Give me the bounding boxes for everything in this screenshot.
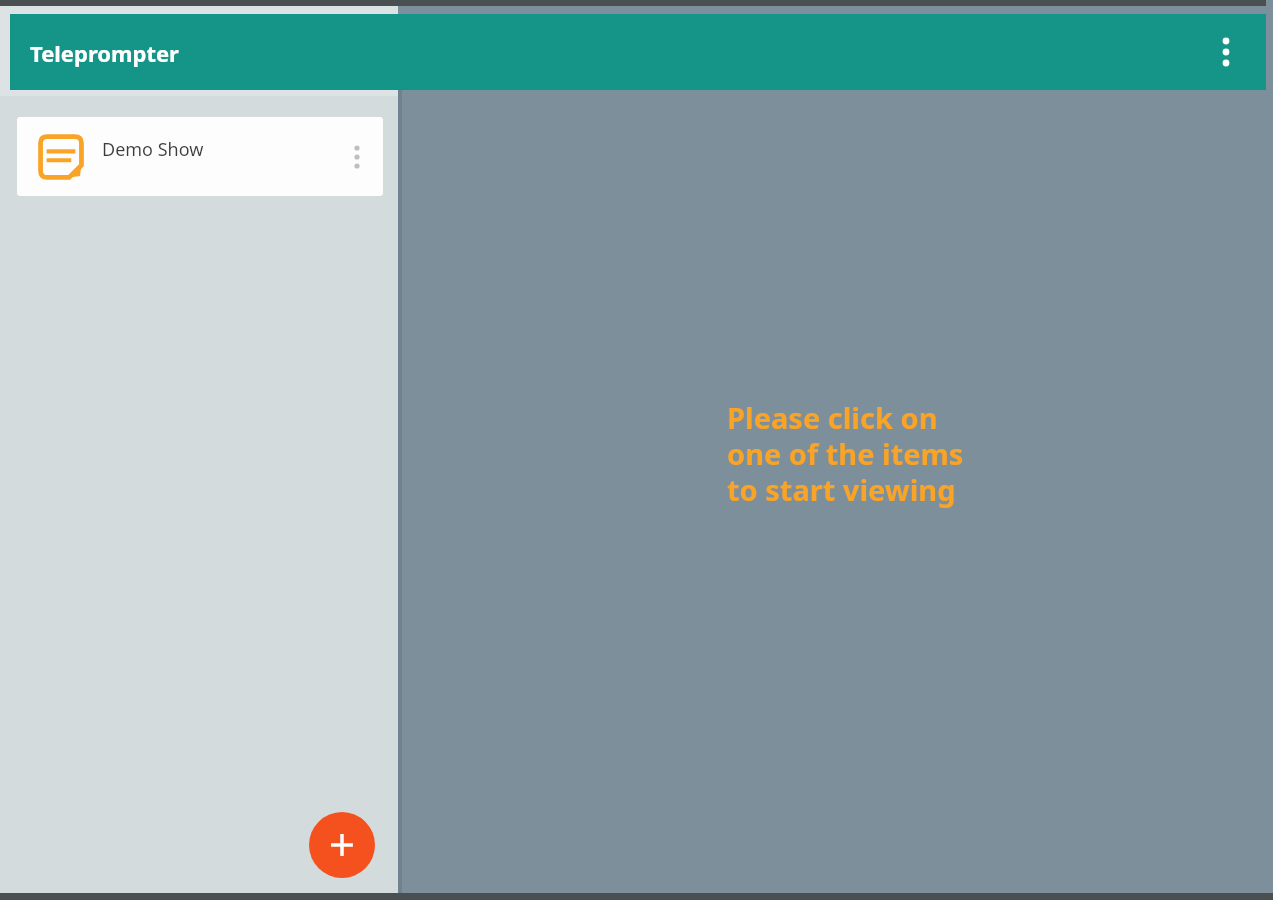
staticText: Demo Show <box>102 137 204 162</box>
staticText: Teleprompter <box>30 38 179 68</box>
button[interactable]: Demo Show <box>17 117 383 196</box>
staticText: Please click on one of the items to star… <box>727 398 964 510</box>
button[interactable]: More options <box>1202 28 1250 76</box>
button[interactable]: More options for Demo Show <box>335 135 379 179</box>
button[interactable]: Add new show <box>309 812 375 878</box>
